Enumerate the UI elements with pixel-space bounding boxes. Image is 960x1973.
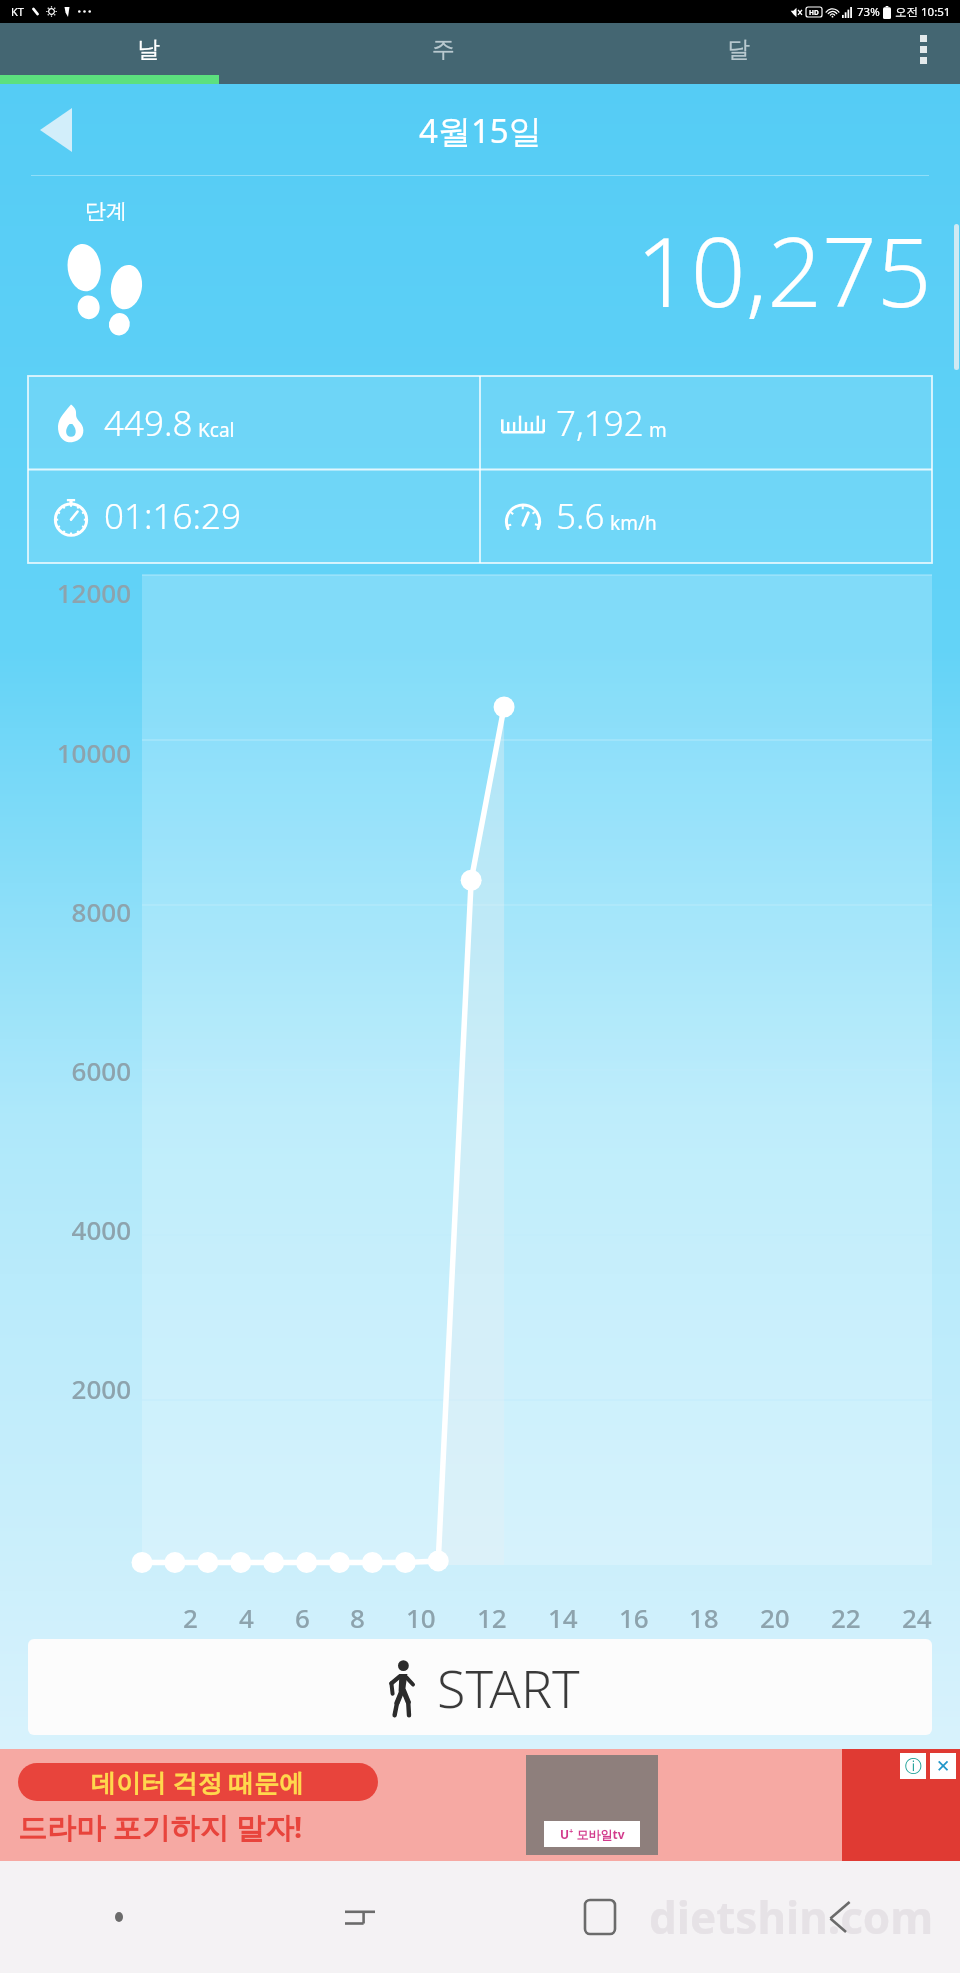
button[interactable]: Previous day [30, 104, 82, 156]
button[interactable]: Advertisement [0, 1749, 960, 1861]
button[interactable]: Recents [240, 1861, 480, 1973]
staticText: ⓘ [905, 1756, 922, 1777]
staticText: 2000 [71, 1371, 131, 1406]
button[interactable]: More options [886, 23, 960, 75]
button[interactable]: 449.8 [28, 376, 480, 469]
staticText: 단계 [85, 198, 127, 224]
staticText: 10 [406, 1600, 436, 1635]
button[interactable]: 01:16:29 [28, 469, 480, 563]
staticText: 16 [619, 1600, 649, 1635]
staticText: 오전 10:51 [895, 4, 951, 20]
staticText: km/h [610, 510, 657, 536]
staticText: 10000 [56, 735, 131, 770]
button[interactable]: Home [480, 1861, 720, 1973]
staticText: 20 [760, 1600, 790, 1635]
staticText: 날 [137, 35, 160, 64]
staticText: 달 [727, 35, 750, 64]
staticText: Kcal [198, 417, 235, 443]
button[interactable]: 달 [591, 23, 886, 75]
staticText: 18 [689, 1600, 719, 1635]
staticText: 8000 [71, 894, 131, 929]
staticText: 449.8 [104, 399, 193, 447]
staticText: 주 [432, 35, 455, 64]
button[interactable]: 7,192 [480, 376, 932, 469]
staticText: 24 [902, 1600, 932, 1635]
button[interactable]: Close ad [930, 1753, 956, 1779]
staticText: m [649, 417, 667, 443]
staticText: 4000 [71, 1212, 131, 1247]
staticText: 데이터 걱정 때문에 [91, 1765, 305, 1799]
button[interactable]: Menu [0, 1861, 240, 1973]
staticText: ✕ [936, 1756, 951, 1776]
staticText: 4 [239, 1600, 254, 1635]
staticText: 22 [831, 1600, 861, 1635]
staticText: KT [11, 4, 24, 19]
staticText: U⁺ 모바일tv [560, 1826, 625, 1842]
button[interactable]: 주 [296, 23, 591, 75]
staticText: 7,192 [556, 399, 644, 447]
button[interactable]: START [28, 1639, 932, 1735]
button[interactable]: 날 [0, 23, 296, 75]
staticText: 6 [295, 1600, 310, 1635]
staticText: 8 [350, 1600, 365, 1635]
button[interactable]: 5.6 [480, 469, 932, 563]
staticText: 6000 [71, 1053, 131, 1088]
staticText: 10,275 [636, 204, 932, 335]
staticText: 73% [857, 4, 880, 20]
staticText: START [437, 1652, 580, 1723]
button[interactable]: Back [720, 1861, 960, 1973]
staticText: HD [809, 8, 819, 17]
staticText: 14 [548, 1600, 578, 1635]
staticText: 5.6 [556, 492, 605, 540]
staticText: 01:16:29 [104, 492, 241, 540]
staticText: 4월15일 [419, 108, 542, 153]
staticText: 2 [183, 1600, 198, 1635]
staticText: 12 [477, 1600, 507, 1635]
staticText: dietshin.com [649, 1887, 934, 1947]
staticText: 12000 [56, 575, 131, 610]
staticText: 드라마 포기하지 말자! [18, 1807, 303, 1847]
